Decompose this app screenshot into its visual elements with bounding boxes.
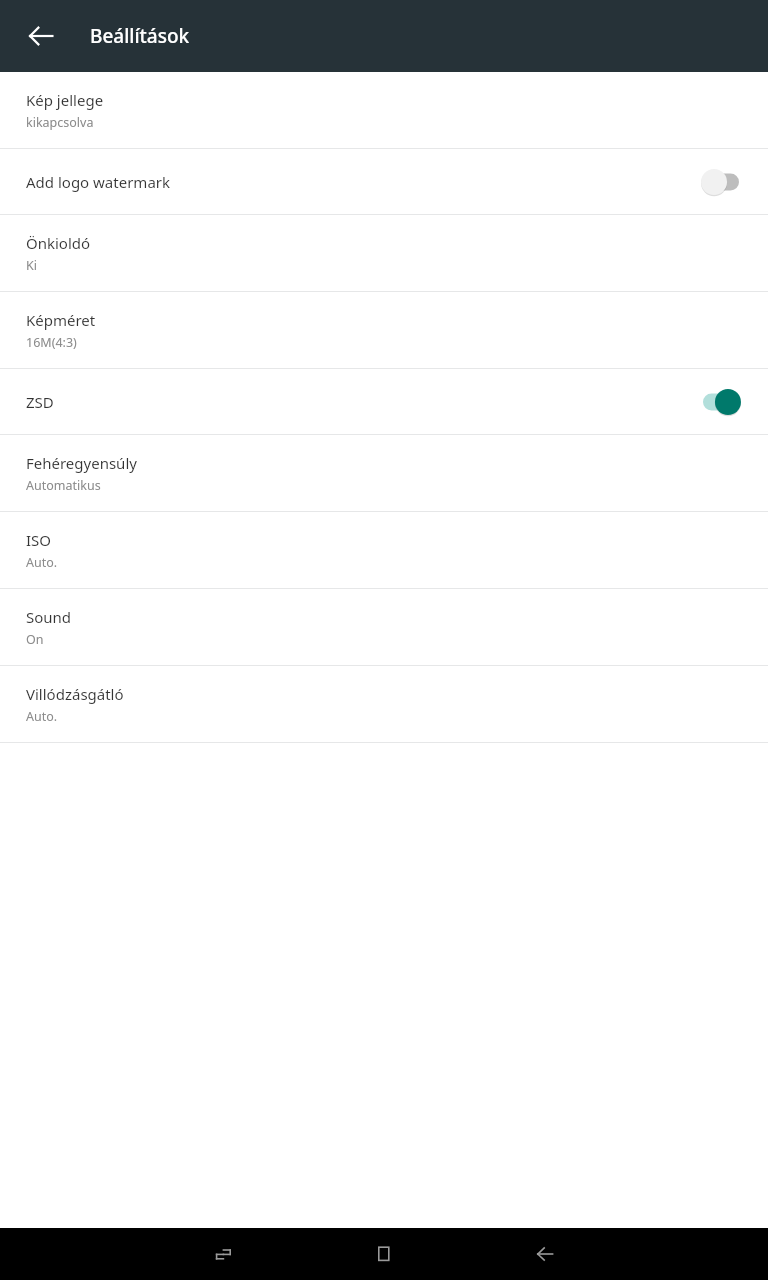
staticText: kikapcsolva [26,114,94,131]
staticText: Villódzásgátló [26,684,124,704]
button[interactable]: Back [519,1228,571,1280]
staticText: Kép jellege [26,90,104,110]
staticText: 16M(4:3) [26,334,77,351]
staticText: Képméret [26,310,96,330]
button[interactable]: Add logo watermark [0,149,768,214]
button[interactable]: ISO [0,512,768,588]
button[interactable]: ZSD [0,369,768,434]
button[interactable]: Képméret [0,292,768,368]
staticText: Beállítások [90,23,190,49]
staticText: On [26,631,44,648]
button[interactable]: Sound [0,589,768,665]
staticText: Ki [26,257,37,274]
button[interactable]: Villódzásgátló [0,666,768,742]
staticText: Automatikus [26,477,101,494]
staticText: ISO [26,530,52,550]
staticText: Önkioldó [26,233,91,253]
staticText: ZSD [26,392,698,412]
button[interactable]: Önkioldó [0,215,768,291]
staticText: Add logo watermark [26,172,698,192]
button[interactable]: Back [14,9,68,63]
staticText: Fehéregyensúly [26,453,137,473]
button[interactable]: Home [358,1228,410,1280]
staticText: Auto. [26,554,58,571]
button[interactable]: Recent apps [197,1228,249,1280]
button[interactable]: Fehéregyensúly [0,435,768,511]
button[interactable]: Kép jellege [0,72,768,148]
staticText: Auto. [26,708,58,725]
staticText: Sound [26,607,72,627]
